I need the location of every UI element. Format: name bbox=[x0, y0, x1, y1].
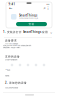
staticText: Wi-Fi 路由器 bbox=[5, 69, 10, 71]
staticText: 1. 安装并打开 SmartThings 应用 bbox=[3, 30, 48, 34]
staticText: Samsung Electronics Co., Ltd. bbox=[19, 17, 38, 19]
staticText: SmartThings bbox=[19, 14, 37, 17]
button[interactable]: Device bbox=[16, 63, 24, 67]
staticText: 点击右上角的加号添加新设备 bbox=[5, 87, 18, 89]
staticText: ▮▮▮ bbox=[46, 3, 49, 5]
staticText: 安装 bbox=[28, 22, 34, 26]
staticText: 在手机上打开 SmartThings 应用，使用您的三星账户登录。 bbox=[3, 44, 32, 46]
button[interactable]: 安装 bbox=[16, 22, 47, 26]
staticText: 设备要求 bbox=[5, 39, 17, 42]
staticText: 2. 添加您的设备 bbox=[5, 81, 27, 84]
button[interactable]: Device bbox=[32, 63, 40, 67]
staticText: 如果还没有账户，请先注册一个新账户。 bbox=[3, 47, 21, 48]
staticText: 智能电视 bbox=[5, 75, 9, 77]
button[interactable]: Back bbox=[8, 6, 12, 10]
staticText: 9:41 bbox=[8, 2, 15, 6]
staticText: Android 8.0 或更高版本 bbox=[5, 43, 18, 45]
button[interactable]: Device bbox=[8, 63, 16, 67]
staticText: ← bbox=[9, 6, 12, 10]
staticText: 以下设备可与应用配合使用 bbox=[5, 59, 17, 60]
staticText: ⌕ bbox=[43, 6, 45, 10]
button[interactable]: Search bbox=[42, 6, 46, 10]
staticText: 支持的设备 bbox=[5, 55, 20, 58]
button[interactable]: Device bbox=[24, 63, 32, 67]
button[interactable]: Device bbox=[40, 63, 48, 67]
staticText: ⋮ bbox=[46, 6, 50, 10]
button[interactable]: More options bbox=[46, 6, 49, 10]
staticText: ⌄ bbox=[49, 30, 52, 34]
button[interactable]: Expand bbox=[49, 30, 53, 34]
